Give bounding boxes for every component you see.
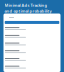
staticText: and optimal probability bbox=[4, 8, 51, 14]
button[interactable] bbox=[3, 50, 26, 58]
button[interactable] bbox=[3, 21, 60, 24]
button[interactable] bbox=[3, 27, 26, 35]
staticText: Minimal Ads Tracking bbox=[4, 2, 47, 8]
button[interactable] bbox=[3, 35, 26, 43]
button[interactable] bbox=[3, 66, 26, 72]
button[interactable] bbox=[3, 43, 26, 50]
button[interactable] bbox=[3, 58, 26, 66]
